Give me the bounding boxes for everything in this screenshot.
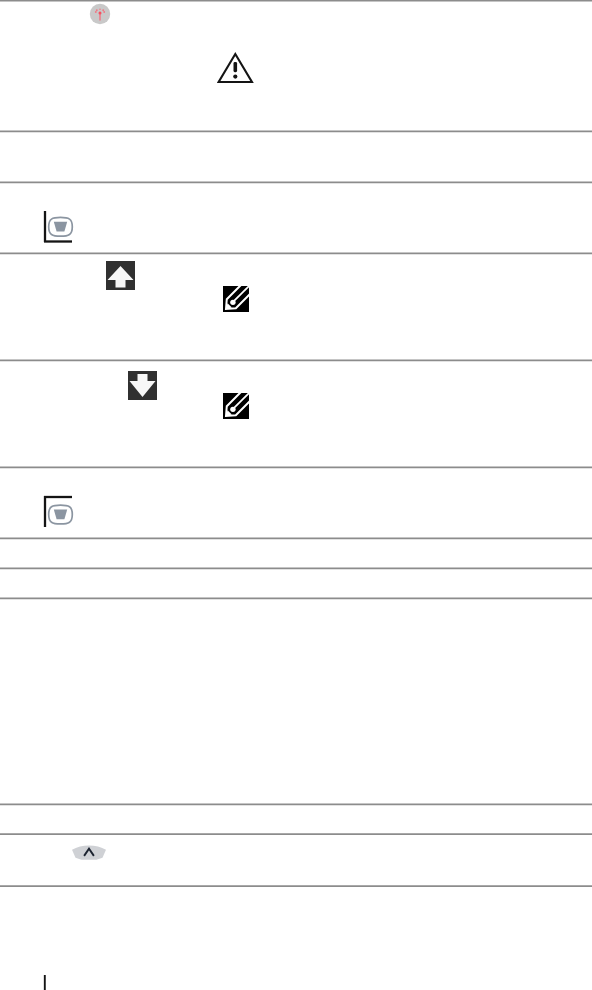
button[interactable]: Increase xyxy=(104,259,137,292)
button[interactable]: Edit xyxy=(221,284,251,314)
button[interactable]: Chart with lower limit xyxy=(40,206,76,244)
button[interactable]: Wireless signal status xyxy=(88,2,112,26)
button[interactable]: Decrease xyxy=(126,369,159,402)
button[interactable]: Edit xyxy=(221,391,251,421)
button[interactable]: Chart with upper limit xyxy=(40,491,76,529)
button[interactable]: Collapse xyxy=(67,840,111,864)
button[interactable]: Warning xyxy=(214,50,258,88)
